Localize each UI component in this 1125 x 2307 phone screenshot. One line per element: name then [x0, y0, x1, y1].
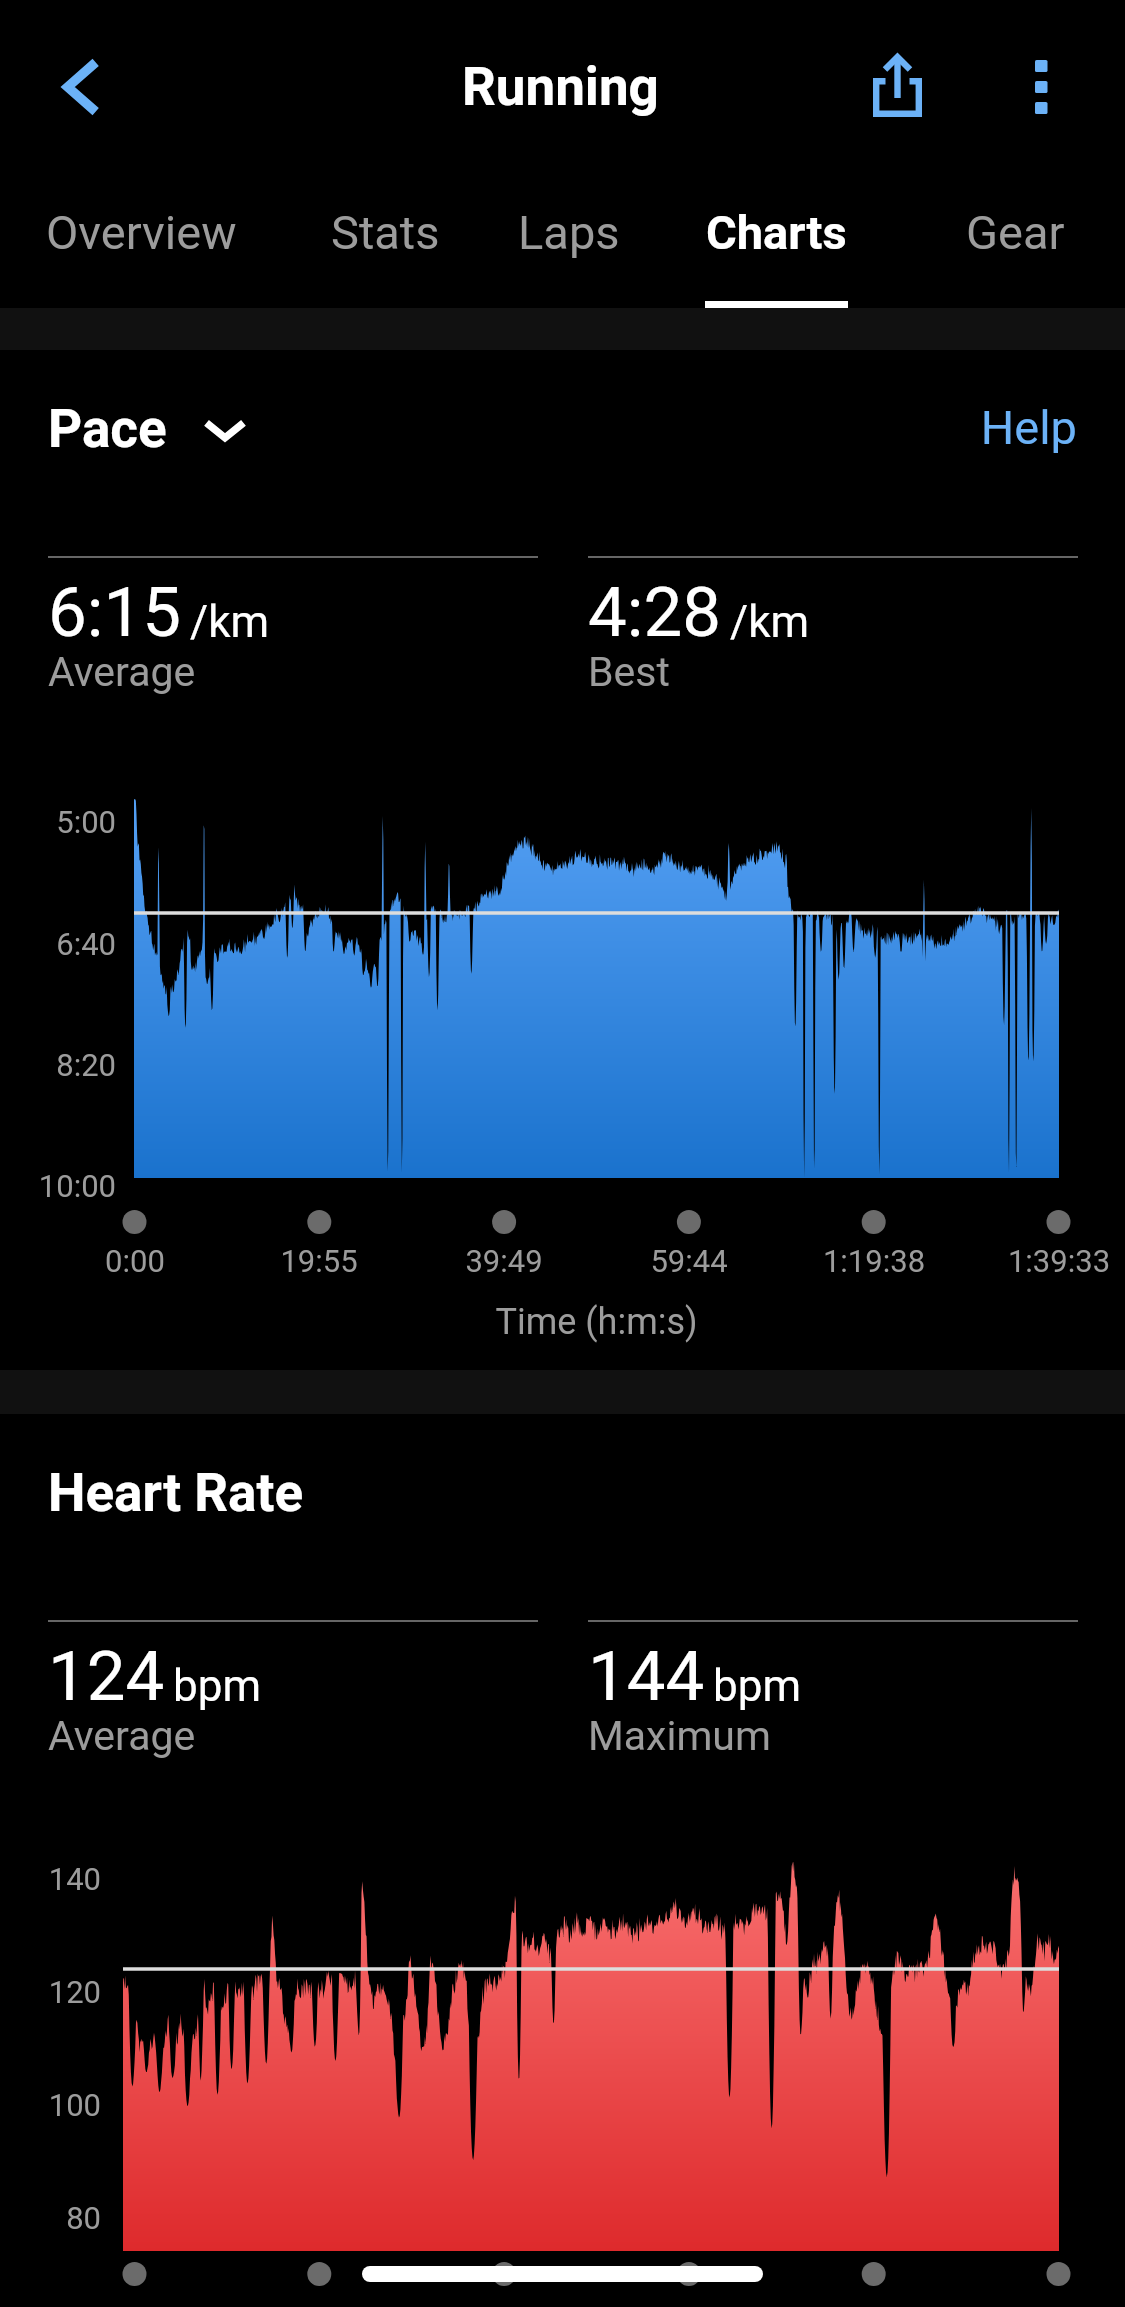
- staticText: 100: [0, 2087, 101, 2123]
- staticText: 144: [588, 1636, 705, 1717]
- button[interactable]: Stats: [305, 180, 465, 308]
- staticText: Maximum: [588, 1712, 771, 1760]
- staticText: Help: [966, 400, 1077, 455]
- button[interactable]: Charts: [690, 180, 862, 308]
- staticText: Average: [48, 648, 196, 696]
- staticText: Pace: [48, 398, 167, 460]
- staticText: Running: [462, 56, 659, 118]
- staticText: 6:40: [0, 926, 116, 962]
- button[interactable]: More options: [993, 35, 1089, 131]
- staticText: Charts: [706, 205, 847, 260]
- button[interactable]: Overview: [22, 180, 260, 308]
- staticText: 140: [0, 1861, 101, 1897]
- button[interactable]: Share: [849, 35, 945, 131]
- staticText: /km: [190, 596, 270, 648]
- staticText: 5:00: [0, 804, 116, 840]
- staticText: 39:49: [344, 1243, 664, 1279]
- staticText: Laps: [518, 205, 620, 260]
- staticText: bpm: [173, 1660, 261, 1712]
- staticText: Time (h:m:s): [134, 1301, 1059, 1343]
- staticText: bpm: [713, 1660, 801, 1712]
- staticText: 6:15: [48, 572, 182, 653]
- staticText: 10:00: [0, 1168, 116, 1204]
- staticText: Stats: [331, 205, 440, 260]
- staticText: 4:28: [588, 572, 722, 653]
- staticText: Heart Rate: [48, 1462, 304, 1524]
- staticText: 59:44: [529, 1243, 849, 1279]
- staticText: Average: [48, 1712, 196, 1760]
- staticText: 8:20: [0, 1047, 116, 1083]
- staticText: 124: [48, 1636, 165, 1717]
- staticText: Overview: [46, 205, 237, 260]
- staticText: 0:00: [0, 1243, 295, 1279]
- button[interactable]: Gear: [940, 180, 1090, 308]
- button[interactable]: Laps: [500, 180, 638, 308]
- button[interactable]: Pace: [48, 398, 247, 460]
- staticText: Gear: [966, 205, 1065, 260]
- staticText: 120: [0, 1974, 101, 2010]
- staticText: 19:55: [159, 1243, 479, 1279]
- staticText: Best: [588, 648, 670, 696]
- button[interactable]: Back: [32, 39, 128, 135]
- staticText: 1:39:33: [899, 1243, 1125, 1279]
- staticText: 80: [0, 2200, 101, 2236]
- button[interactable]: Help: [966, 400, 1077, 455]
- staticText: /km: [730, 596, 810, 648]
- staticText: 1:19:38: [714, 1243, 1034, 1279]
